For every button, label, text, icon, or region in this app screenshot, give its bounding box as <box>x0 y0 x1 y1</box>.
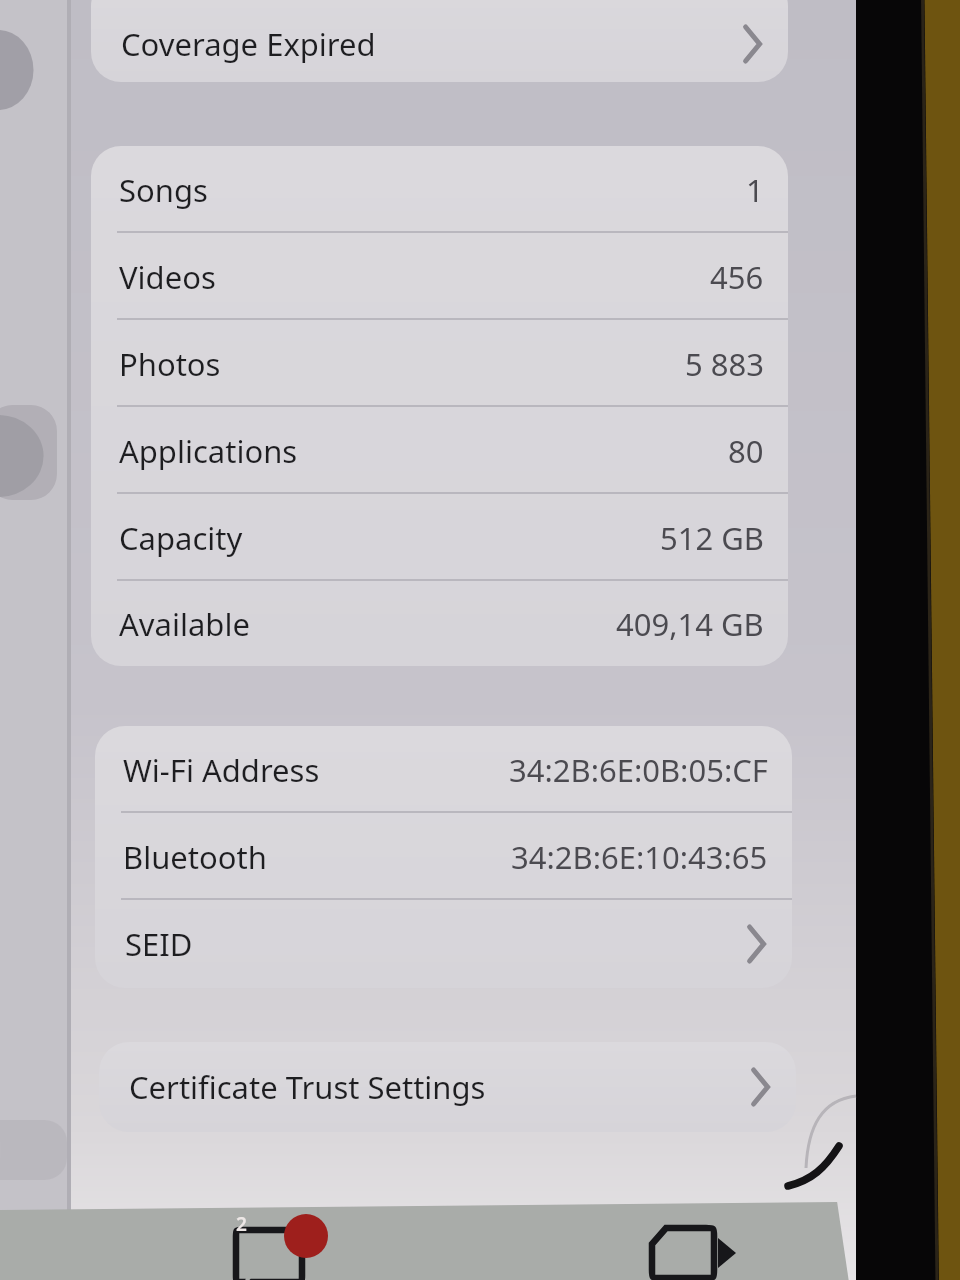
staticText: 34:2B:6E:0B:05:CF <box>509 749 768 791</box>
staticText: Videos <box>119 256 216 298</box>
staticText: 2 <box>236 1211 247 1237</box>
staticText: Available <box>119 603 250 645</box>
button[interactable]: FaceTime <box>634 1216 724 1270</box>
button[interactable]: Songs <box>91 146 788 233</box>
button[interactable]: SEID <box>95 900 792 987</box>
button[interactable]: Applications <box>91 407 788 494</box>
staticText: 456 <box>710 256 764 298</box>
button[interactable]: Bluetooth <box>95 813 792 900</box>
staticText: Certificate Trust Settings <box>129 1066 486 1108</box>
button[interactable]: Wi-Fi Address <box>95 726 792 813</box>
button[interactable]: Available <box>91 581 788 666</box>
staticText: Songs <box>119 169 208 211</box>
staticText: 80 <box>728 430 764 472</box>
button[interactable]: Coverage Expired <box>91 0 788 82</box>
staticText: 1 <box>746 169 764 211</box>
button[interactable]: Capacity <box>91 494 788 581</box>
staticText: Capacity <box>119 517 243 559</box>
staticText: 409,14 GB <box>616 603 764 645</box>
button[interactable]: Photos <box>91 320 788 407</box>
staticText: Photos <box>119 343 221 385</box>
staticText: Coverage Expired <box>121 23 376 65</box>
button[interactable]: Videos <box>91 233 788 320</box>
staticText: 34:2B:6E:10:43:65 <box>511 836 768 878</box>
staticText: 5 883 <box>685 343 764 385</box>
staticText: Applications <box>119 430 298 472</box>
staticText: SEID <box>125 923 193 965</box>
button[interactable]: Certificate Trust Settings <box>99 1042 796 1132</box>
staticText: Wi-Fi Address <box>123 749 320 791</box>
staticText: 512 GB <box>660 517 764 559</box>
button[interactable]: Messages, 2 unread <box>208 1208 316 1274</box>
staticText: Bluetooth <box>123 836 267 878</box>
